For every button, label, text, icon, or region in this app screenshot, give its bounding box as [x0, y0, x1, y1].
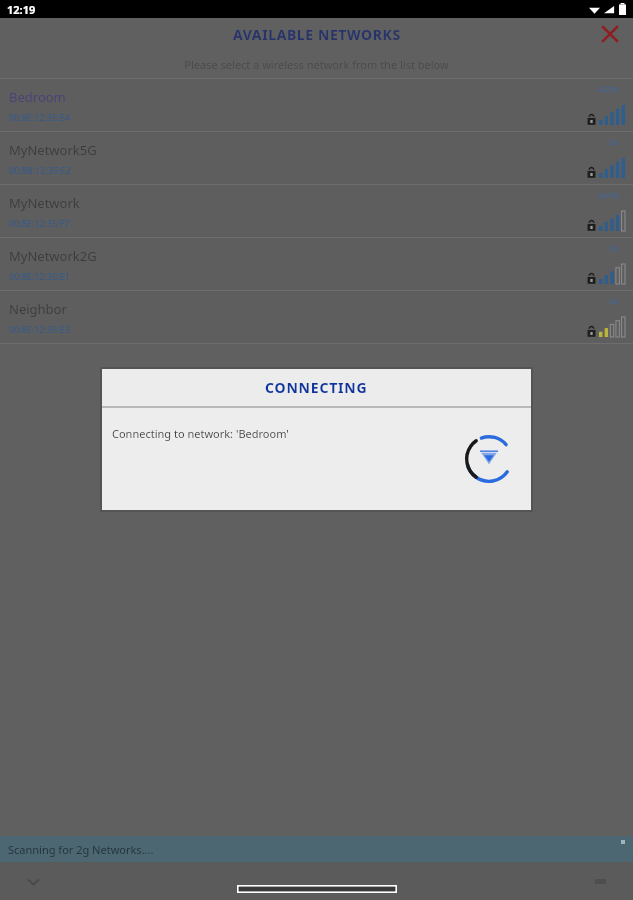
staticText: 00:8E:12:35:E1 [9, 270, 70, 282]
staticText: Connecting to network: 'Bedroom' [112, 426, 289, 441]
button[interactable]: MyNetwork2G [0, 238, 633, 290]
button[interactable]: MyNetwork [0, 185, 633, 237]
staticText: 00:8E:12:35:E3 [9, 323, 70, 335]
staticText: MyNetwork2G [9, 247, 97, 265]
staticText: 00:8E:12:35:E4 [9, 111, 70, 123]
button[interactable]: Recents [589, 870, 611, 892]
staticText: 2G [609, 244, 619, 254]
button[interactable]: Bedroom [0, 79, 633, 131]
staticText: Neighbor [9, 300, 67, 318]
staticText: 5G [609, 138, 619, 148]
staticText: Please select a wireless network from th… [184, 57, 449, 72]
staticText: Scanning for 2g Networks.... [8, 842, 154, 857]
staticText: MyNetwork [9, 194, 80, 212]
button[interactable]: Neighbor [0, 291, 633, 343]
button[interactable]: Scanning for 2g Networks.... [0, 836, 633, 862]
button[interactable]: Back [22, 870, 44, 892]
staticText: 12:19 [7, 2, 36, 17]
staticText: 2G/5G [598, 191, 619, 201]
staticText: 00:8E:12:35:F7 [9, 217, 70, 229]
staticText: AVAILABLE NETWORKS [233, 25, 401, 44]
staticText: 00:8B:12:35:E2 [9, 164, 71, 176]
staticText: CONNECTING [265, 378, 368, 397]
staticText: 2G/5G [598, 85, 619, 95]
staticText: Bedroom [9, 88, 66, 106]
button[interactable]: MyNetwork5G [0, 132, 633, 184]
staticText: 2G [609, 297, 619, 307]
staticText: MyNetwork5G [9, 141, 97, 159]
button[interactable]: Home [237, 885, 397, 893]
button[interactable]: Close [595, 19, 625, 49]
